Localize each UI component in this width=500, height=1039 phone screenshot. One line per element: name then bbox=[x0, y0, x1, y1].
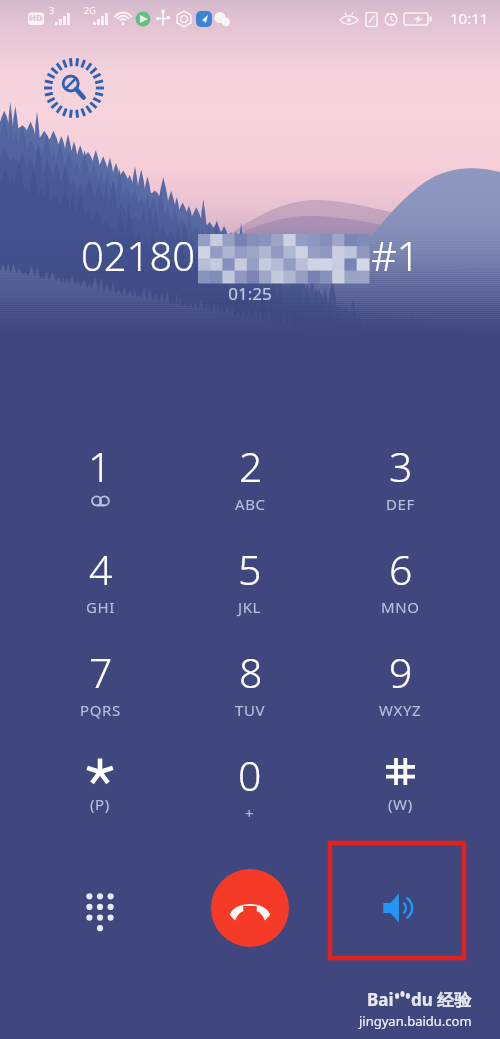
staticText: PQRS bbox=[80, 700, 121, 720]
staticText: 01:25 bbox=[0, 282, 500, 305]
button[interactable]: 3 bbox=[325, 436, 475, 539]
staticText: 9 bbox=[389, 644, 413, 700]
button[interactable]: 7 bbox=[25, 642, 175, 745]
staticText: 7 bbox=[89, 644, 113, 700]
staticText: 4 bbox=[89, 541, 113, 597]
button[interactable]: 1 bbox=[25, 436, 175, 539]
staticText: JKL bbox=[238, 597, 262, 617]
staticText: ABC bbox=[235, 494, 266, 514]
staticText: 3 bbox=[49, 4, 55, 16]
button[interactable]: 8 bbox=[175, 642, 325, 745]
button[interactable]: 6 bbox=[325, 539, 475, 642]
staticText: MNO bbox=[381, 597, 420, 617]
staticText: #1 bbox=[371, 228, 420, 282]
staticText: HD bbox=[29, 11, 43, 23]
staticText: Bai bbox=[367, 988, 394, 1011]
staticText: DEF bbox=[386, 494, 415, 514]
staticText: 2G bbox=[84, 4, 96, 16]
staticText: 0 bbox=[238, 747, 262, 803]
button[interactable]: End call bbox=[211, 869, 289, 947]
staticText: + bbox=[245, 803, 255, 823]
button[interactable]: 0 bbox=[175, 745, 325, 848]
staticText: (W) bbox=[388, 794, 413, 814]
staticText: 10:11 bbox=[450, 8, 489, 28]
button[interactable]: 2 bbox=[175, 436, 325, 539]
staticText: 02180 bbox=[81, 228, 196, 282]
staticText: 6 bbox=[389, 541, 413, 597]
staticText: (P) bbox=[90, 794, 110, 814]
staticText: 1 bbox=[88, 438, 112, 494]
staticText: WXYZ bbox=[379, 700, 422, 720]
button[interactable]: (W) bbox=[325, 745, 475, 848]
staticText: TUV bbox=[235, 700, 266, 720]
button[interactable]: (P) bbox=[25, 745, 175, 848]
staticText: 2 bbox=[239, 438, 263, 494]
staticText: 3 bbox=[389, 438, 413, 494]
staticText: 5 bbox=[238, 541, 262, 597]
staticText: GHI bbox=[86, 597, 115, 617]
button[interactable]: 4 bbox=[25, 539, 175, 642]
button[interactable]: 9 bbox=[325, 642, 475, 745]
staticText: jingyan.baidu.com bbox=[359, 1012, 472, 1030]
button[interactable]: Speaker bbox=[325, 845, 475, 970]
button[interactable]: 5 bbox=[175, 539, 325, 642]
button[interactable]: Show dialpad bbox=[25, 845, 175, 970]
staticText: 8 bbox=[239, 644, 263, 700]
staticText: du 经验 bbox=[411, 988, 472, 1011]
